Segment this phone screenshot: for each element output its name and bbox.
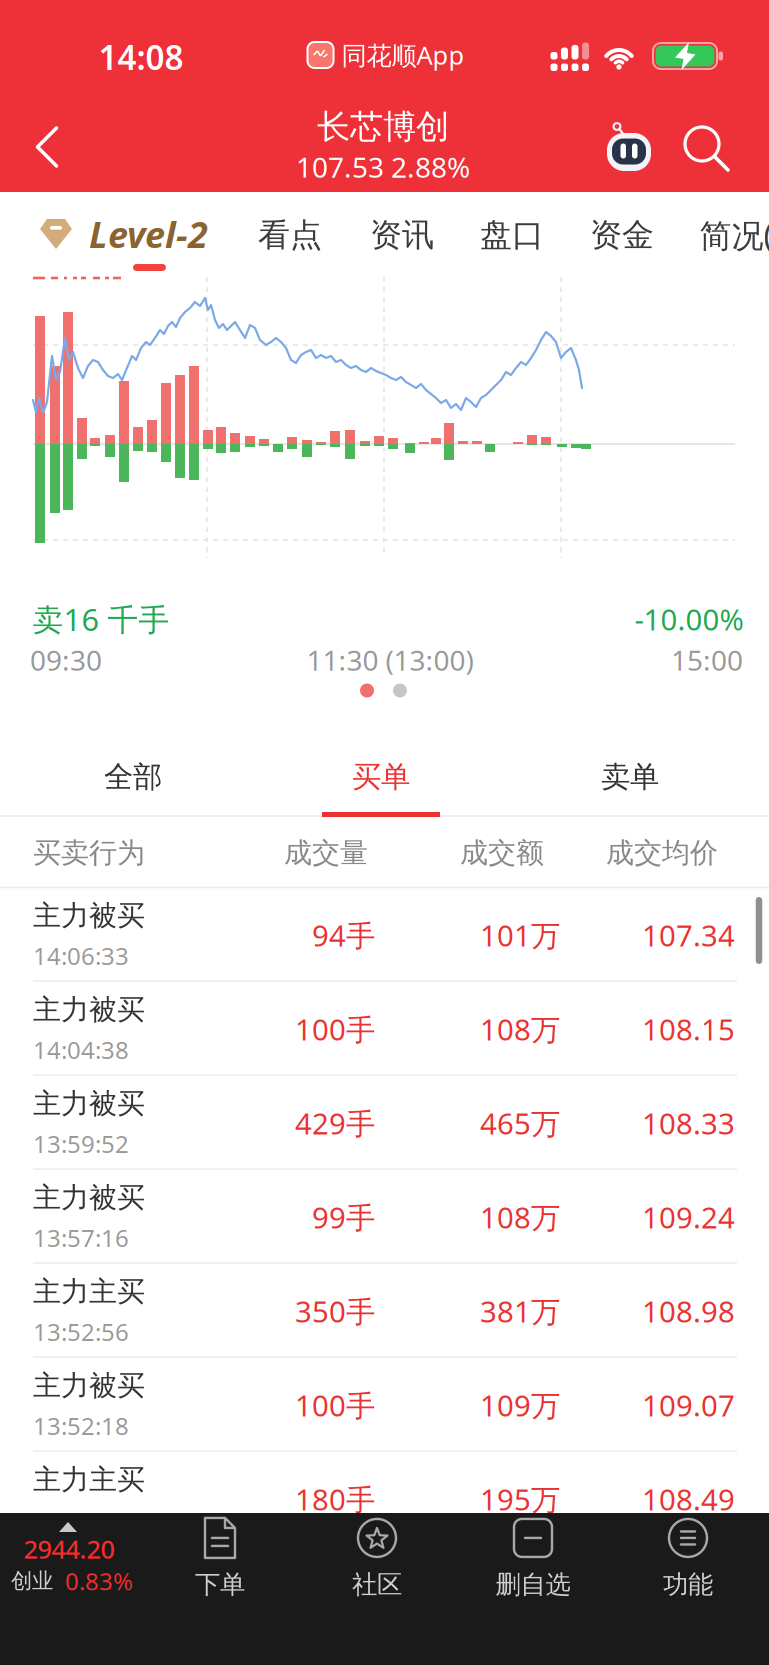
staticText: 13:59:52 (33, 1128, 129, 1160)
staticText (33, 1504, 39, 1536)
staticText: 0.83% (65, 1565, 133, 1597)
staticText: 资讯 (370, 215, 434, 255)
staticText: 108.15 (642, 1009, 735, 1048)
staticText: 主力被买 (33, 1368, 145, 1403)
staticText: 108.98 (642, 1291, 735, 1330)
button[interactable]: 社区 (352, 1516, 402, 1600)
button[interactable]: 买单 (256, 742, 506, 812)
staticText: 109.07 (642, 1385, 735, 1424)
button[interactable]: 下单 (195, 1516, 245, 1600)
button[interactable]: 功能 (663, 1516, 713, 1600)
staticText: 108.49 (642, 1479, 735, 1518)
button[interactable]: 看点 (258, 215, 322, 255)
staticText: Level-2 (89, 210, 208, 258)
staticText: 看点 (258, 215, 322, 255)
button[interactable]: Level-2 (40, 210, 208, 258)
staticText: 主力主买 (33, 1462, 145, 1497)
button[interactable]: 2944.20 (0, 1513, 156, 1613)
button[interactable]: Search (684, 126, 730, 172)
staticText: 全部 (104, 759, 162, 795)
staticText: 100手 (295, 1009, 375, 1048)
staticText: 创业 (11, 1568, 53, 1594)
staticText: 功能 (663, 1569, 713, 1600)
staticText: 108万 (480, 1197, 560, 1236)
staticText: -10.00% (634, 599, 743, 638)
staticText: 13:57:16 (33, 1222, 129, 1254)
button[interactable]: 资金 (590, 215, 654, 255)
staticText: 买单 (352, 759, 410, 795)
staticText: 14:06:33 (33, 940, 129, 972)
staticText: 101万 (480, 915, 560, 954)
staticText: 108万 (480, 1009, 560, 1048)
staticText: 109万 (480, 1385, 560, 1424)
staticText: 11:30 (13:00) (306, 641, 473, 679)
staticText: 2944.20 (23, 1532, 114, 1566)
staticText: 350手 (295, 1291, 375, 1330)
staticText: 主力被买 (33, 898, 145, 933)
staticText: 465万 (480, 1103, 560, 1142)
staticText: 107.53 2.88% (296, 148, 470, 186)
staticText: 429手 (295, 1103, 375, 1142)
staticText: 简况(F (699, 214, 769, 256)
button[interactable]: Back (35, 126, 58, 168)
button[interactable]: 盘口 (480, 215, 544, 255)
staticText: 社区 (352, 1569, 402, 1600)
staticText: 同花顺App (341, 38, 464, 72)
staticText: 下单 (195, 1569, 245, 1600)
staticText: 94手 (312, 915, 375, 954)
button[interactable]: 简况(F (699, 214, 769, 256)
staticText: 107.34 (642, 915, 735, 954)
button[interactable]: 卖单 (505, 742, 755, 812)
staticText: 成交量 (284, 836, 368, 870)
staticText: 09:30 (30, 641, 102, 679)
staticText: 成交均价 (606, 836, 718, 870)
button[interactable]: 资讯 (370, 215, 434, 255)
button[interactable]: 删自选 (495, 1516, 570, 1600)
staticText: 长芯博创 (317, 106, 449, 147)
staticText: 14:08 (98, 35, 183, 79)
staticText: 卖单 (601, 759, 659, 795)
staticText: 资金 (590, 215, 654, 255)
staticText: 13:52:18 (33, 1410, 129, 1442)
button[interactable]: Assistant (604, 121, 654, 173)
staticText: 主力主买 (33, 1274, 145, 1309)
button[interactable]: 全部 (8, 742, 258, 812)
staticText: 卖16 千手 (32, 599, 169, 639)
staticText: 买卖行为 (33, 836, 145, 870)
staticText: 盘口 (480, 215, 544, 255)
staticText: 14:04:38 (33, 1034, 129, 1066)
staticText: 99手 (312, 1197, 375, 1236)
staticText: 108.33 (642, 1103, 735, 1142)
staticText: 成交额 (460, 836, 544, 870)
staticText: 13:52:56 (33, 1316, 129, 1348)
staticText: 100手 (295, 1385, 375, 1424)
staticText: 主力被买 (33, 1180, 145, 1215)
staticText: 15:00 (671, 641, 743, 679)
staticText: 109.24 (642, 1197, 735, 1236)
staticText: 381万 (480, 1291, 560, 1330)
staticText: 主力被买 (33, 1086, 145, 1121)
staticText: 195万 (480, 1479, 560, 1518)
staticText: 删自选 (495, 1569, 570, 1600)
staticText: 主力被买 (33, 992, 145, 1027)
staticText: 180手 (295, 1479, 375, 1518)
